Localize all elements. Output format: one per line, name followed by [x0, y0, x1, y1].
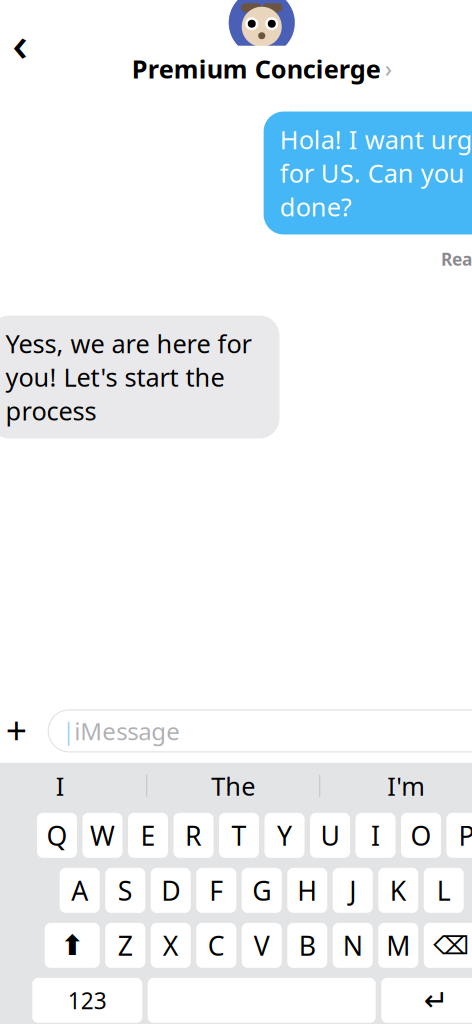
button[interactable]: V — [242, 923, 282, 968]
staticText: Read — [441, 247, 472, 270]
staticText: Y — [277, 818, 292, 853]
button[interactable]: X — [151, 923, 191, 968]
staticText: M — [386, 928, 410, 963]
staticText: The — [211, 769, 255, 803]
button[interactable]: The — [147, 763, 319, 809]
staticText: Yess, we are here for you! Let's start t… — [5, 326, 251, 427]
staticText: I'm — [387, 769, 425, 803]
staticText: I — [371, 818, 380, 853]
staticText: W — [90, 818, 115, 853]
button[interactable]: | — [48, 710, 472, 752]
staticText: T — [231, 818, 246, 853]
button[interactable]: G — [242, 868, 282, 913]
button[interactable]: U — [310, 813, 350, 858]
button[interactable]: N — [333, 923, 373, 968]
button[interactable]: E — [128, 813, 168, 858]
staticText: P — [458, 818, 472, 853]
button[interactable]: B — [287, 923, 327, 968]
staticText: X — [163, 928, 179, 963]
button[interactable]: I — [355, 813, 395, 858]
staticText: › — [385, 53, 392, 84]
staticText: S — [118, 873, 133, 908]
button[interactable]: L — [424, 868, 464, 913]
staticText: Q — [46, 818, 67, 853]
staticText: I — [56, 769, 65, 803]
button[interactable]: Add attachment — [0, 706, 36, 756]
button[interactable]: R — [173, 813, 213, 858]
button[interactable]: Z — [105, 923, 145, 968]
button[interactable]: W — [82, 813, 122, 858]
button[interactable]: K — [378, 868, 418, 913]
staticText: C — [208, 928, 225, 963]
button[interactable]: A — [60, 868, 100, 913]
button[interactable]: H — [287, 868, 327, 913]
staticText: ‹ — [12, 11, 28, 74]
staticText: V — [254, 928, 270, 963]
staticText: | — [62, 716, 74, 746]
staticText: K — [390, 873, 407, 908]
staticText: A — [71, 873, 88, 908]
staticText: ↵ — [424, 984, 449, 1017]
button[interactable]: 123 — [32, 978, 142, 1023]
button[interactable]: Q — [37, 813, 77, 858]
staticText: Premium Concierge — [132, 52, 381, 85]
staticText: Z — [118, 928, 133, 963]
staticText: ⬆ — [61, 929, 84, 961]
button[interactable]: T — [219, 813, 259, 858]
staticText: D — [161, 873, 180, 908]
staticText: Hola! I want urgent visa for US. Can you… — [280, 123, 472, 223]
staticText: N — [343, 928, 363, 963]
staticText: iMessage — [74, 715, 180, 747]
button[interactable]: D — [151, 868, 191, 913]
button[interactable]: P — [446, 813, 472, 858]
staticText: ⌫ — [433, 931, 469, 960]
staticText: G — [252, 873, 271, 908]
staticText: + — [6, 705, 27, 755]
staticText: U — [320, 818, 339, 853]
staticText: 123 — [68, 985, 107, 1015]
staticText: F — [209, 873, 223, 908]
button[interactable]: Return — [381, 978, 472, 1023]
staticText: H — [297, 873, 317, 908]
button[interactable]: M — [378, 923, 418, 968]
button[interactable]: Shift — [45, 923, 100, 968]
button[interactable]: F — [196, 868, 236, 913]
staticText: J — [349, 873, 356, 908]
staticText: O — [410, 818, 431, 853]
button[interactable]: S — [105, 868, 145, 913]
button[interactable]: J — [333, 868, 373, 913]
button[interactable]: O — [401, 813, 441, 858]
button[interactable]: Premium Concierge — [116, 46, 408, 91]
button[interactable]: C — [196, 923, 236, 968]
staticText: E — [140, 818, 155, 853]
button[interactable]: I'm — [320, 763, 472, 809]
staticText: L — [437, 873, 451, 908]
button[interactable]: Back — [0, 14, 46, 77]
button[interactable]: Delete — [424, 923, 472, 968]
staticText: B — [299, 928, 316, 963]
button[interactable]: Y — [264, 813, 304, 858]
button[interactable]: I — [0, 763, 146, 809]
staticText: R — [185, 818, 202, 853]
